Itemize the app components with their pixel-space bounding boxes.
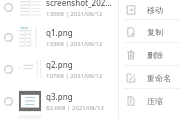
button[interactable]: Select screenshot_2021.png xyxy=(4,3,13,12)
staticText: 82.6KB | 2021/08/12 xyxy=(46,104,104,112)
button[interactable]: Select q1.png xyxy=(4,33,13,42)
staticText: 107KB | 2021/08/12 xyxy=(46,72,103,80)
staticText: 复制 xyxy=(147,27,163,37)
staticText: 重命名 xyxy=(147,73,171,83)
button[interactable]: 复制 xyxy=(118,20,180,43)
button[interactable]: Select q2.png xyxy=(0,53,180,85)
button[interactable]: 删除 xyxy=(118,43,180,66)
staticText: 删除 xyxy=(147,50,163,60)
button[interactable]: Select q2.png xyxy=(4,65,13,74)
staticText: q1.png xyxy=(46,27,73,38)
staticText: screenshot_2021.png xyxy=(46,0,112,8)
staticText: 130KB | 2021/08/12 xyxy=(46,10,103,18)
staticText: q2.png xyxy=(46,59,73,70)
button[interactable]: Select q3.png xyxy=(4,97,13,106)
staticText: 133KB | 2021/08/12 xyxy=(46,40,103,48)
staticText: 移动 xyxy=(147,5,163,15)
button[interactable]: Select screenshot_2021.png xyxy=(0,0,180,23)
staticText: q3.png xyxy=(46,91,73,102)
button[interactable]: 重命名 xyxy=(118,66,180,89)
button[interactable]: 压缩 xyxy=(118,89,180,112)
button[interactable]: Select q3.png xyxy=(0,85,180,117)
button[interactable]: 移动 xyxy=(118,0,180,20)
button[interactable]: Select q1.png xyxy=(0,21,180,53)
staticText: 压缩 xyxy=(147,96,163,106)
